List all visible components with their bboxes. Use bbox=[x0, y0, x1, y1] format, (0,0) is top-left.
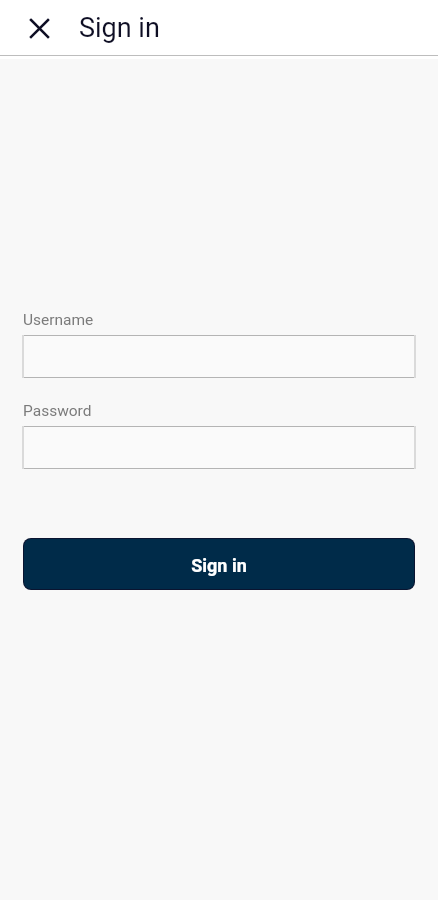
staticText: Password bbox=[23, 402, 92, 420]
staticText: Username bbox=[23, 311, 94, 329]
button[interactable] bbox=[22, 426, 416, 469]
button[interactable]: Sign in bbox=[23, 538, 415, 590]
button[interactable] bbox=[22, 335, 416, 378]
staticText: Sign in bbox=[191, 555, 247, 576]
button[interactable]: Close bbox=[18, 8, 60, 50]
staticText: Sign in bbox=[79, 12, 160, 44]
